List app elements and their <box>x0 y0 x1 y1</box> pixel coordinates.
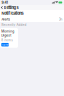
staticText: 9:41 <box>1 0 7 5</box>
button[interactable]: Settings <box>0 5 19 10</box>
staticText: Recently Added <box>1 23 26 27</box>
staticText: Settings <box>3 5 18 10</box>
staticText: 8 items <box>1 38 13 42</box>
staticText: Morning Digest <box>1 29 14 37</box>
staticText: Open <box>2 43 8 46</box>
staticText: On <box>59 17 63 21</box>
staticText: Alerts <box>1 17 10 21</box>
staticText: Notifications <box>1 11 23 16</box>
